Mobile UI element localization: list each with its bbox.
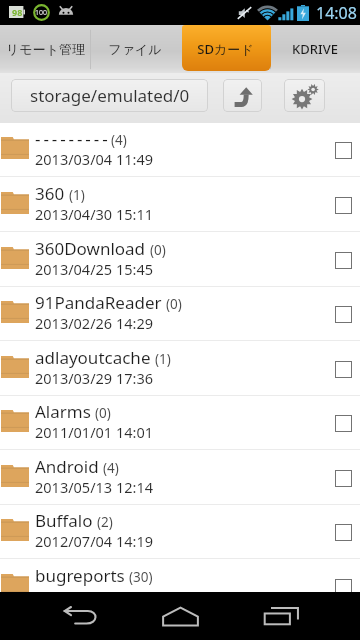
button[interactable]: 360Download xyxy=(0,232,360,287)
button[interactable]: Recent apps xyxy=(251,592,311,640)
staticText: SDカード xyxy=(197,40,254,58)
button[interactable]: SDカード xyxy=(180,25,270,73)
staticText: 2013/02/26 14:29 xyxy=(35,313,153,333)
button[interactable]: Select item xyxy=(327,403,360,443)
staticText: (2) xyxy=(97,513,113,531)
button[interactable]: Home xyxy=(150,592,210,640)
button[interactable]: リモート管理 xyxy=(0,25,90,73)
staticText: (1) xyxy=(155,350,171,368)
staticText: bugreports xyxy=(35,564,125,587)
staticText: storage/emulated/0 xyxy=(30,84,190,107)
button[interactable]: Settings xyxy=(284,79,325,112)
staticText: (30) xyxy=(129,568,153,586)
button[interactable]: Back xyxy=(51,592,111,640)
button[interactable]: Alarms xyxy=(0,395,360,450)
button[interactable]: Select item xyxy=(327,294,360,334)
staticText: 2013/03/04 11:49 xyxy=(35,149,153,169)
button[interactable]: Select item xyxy=(327,512,360,552)
button[interactable]: ファイル xyxy=(90,25,180,73)
button[interactable]: 91PandaReader xyxy=(0,286,360,341)
staticText: 360 xyxy=(35,182,65,205)
button[interactable]: Buffalo xyxy=(0,504,360,559)
staticText: Android xyxy=(35,455,99,478)
staticText: 100 xyxy=(35,8,48,18)
button[interactable]: adlayoutcache xyxy=(0,341,360,396)
button[interactable]: Up one level xyxy=(223,79,262,112)
staticText: (1) xyxy=(69,186,85,204)
staticText: 2013/04/30 15:11 xyxy=(35,204,153,224)
button[interactable]: Select item xyxy=(327,458,360,498)
button[interactable]: storage/emulated/0 xyxy=(11,79,208,112)
button[interactable]: Select item xyxy=(327,240,360,280)
button[interactable]: Select item xyxy=(327,567,360,592)
staticText: 91PandaReader xyxy=(35,291,162,314)
staticText: (4) xyxy=(111,131,127,149)
staticText: リモート管理 xyxy=(6,41,85,57)
button[interactable]: Android xyxy=(0,450,360,505)
staticText: 2013/03/29 17:36 xyxy=(35,368,153,388)
staticText: KDRIVE xyxy=(292,40,338,58)
staticText: 14:08 xyxy=(316,2,357,24)
button[interactable]: Select item xyxy=(327,349,360,389)
staticText: ファイル xyxy=(108,41,162,57)
button[interactable] xyxy=(182,25,271,71)
staticText: 98 xyxy=(12,6,23,18)
button[interactable]: Select item xyxy=(327,130,360,170)
staticText: Alarms xyxy=(35,400,91,423)
button[interactable]: Select item xyxy=(327,185,360,225)
staticText: adlayoutcache xyxy=(35,346,151,369)
staticText: Buffalo xyxy=(35,509,93,532)
button[interactable]: 360 xyxy=(0,177,360,232)
staticText: 2012/07/04 14:19 xyxy=(35,531,153,551)
staticText: - - - - - - - - - xyxy=(35,127,107,150)
staticText: 2013/05/13 12:14 xyxy=(35,477,153,497)
staticText: (0) xyxy=(166,295,182,313)
staticText: (0) xyxy=(150,241,166,259)
button[interactable]: KDRIVE xyxy=(270,25,360,73)
staticText: 2013/04/25 15:45 xyxy=(35,259,153,279)
staticText: 2011/01/01 14:01 xyxy=(35,422,153,442)
button[interactable]: bugreports xyxy=(0,559,360,592)
staticText: (0) xyxy=(95,404,111,422)
staticText: (4) xyxy=(103,459,119,477)
button[interactable]: - - - - - - - - - xyxy=(0,123,360,177)
staticText: 360Download xyxy=(35,237,146,260)
